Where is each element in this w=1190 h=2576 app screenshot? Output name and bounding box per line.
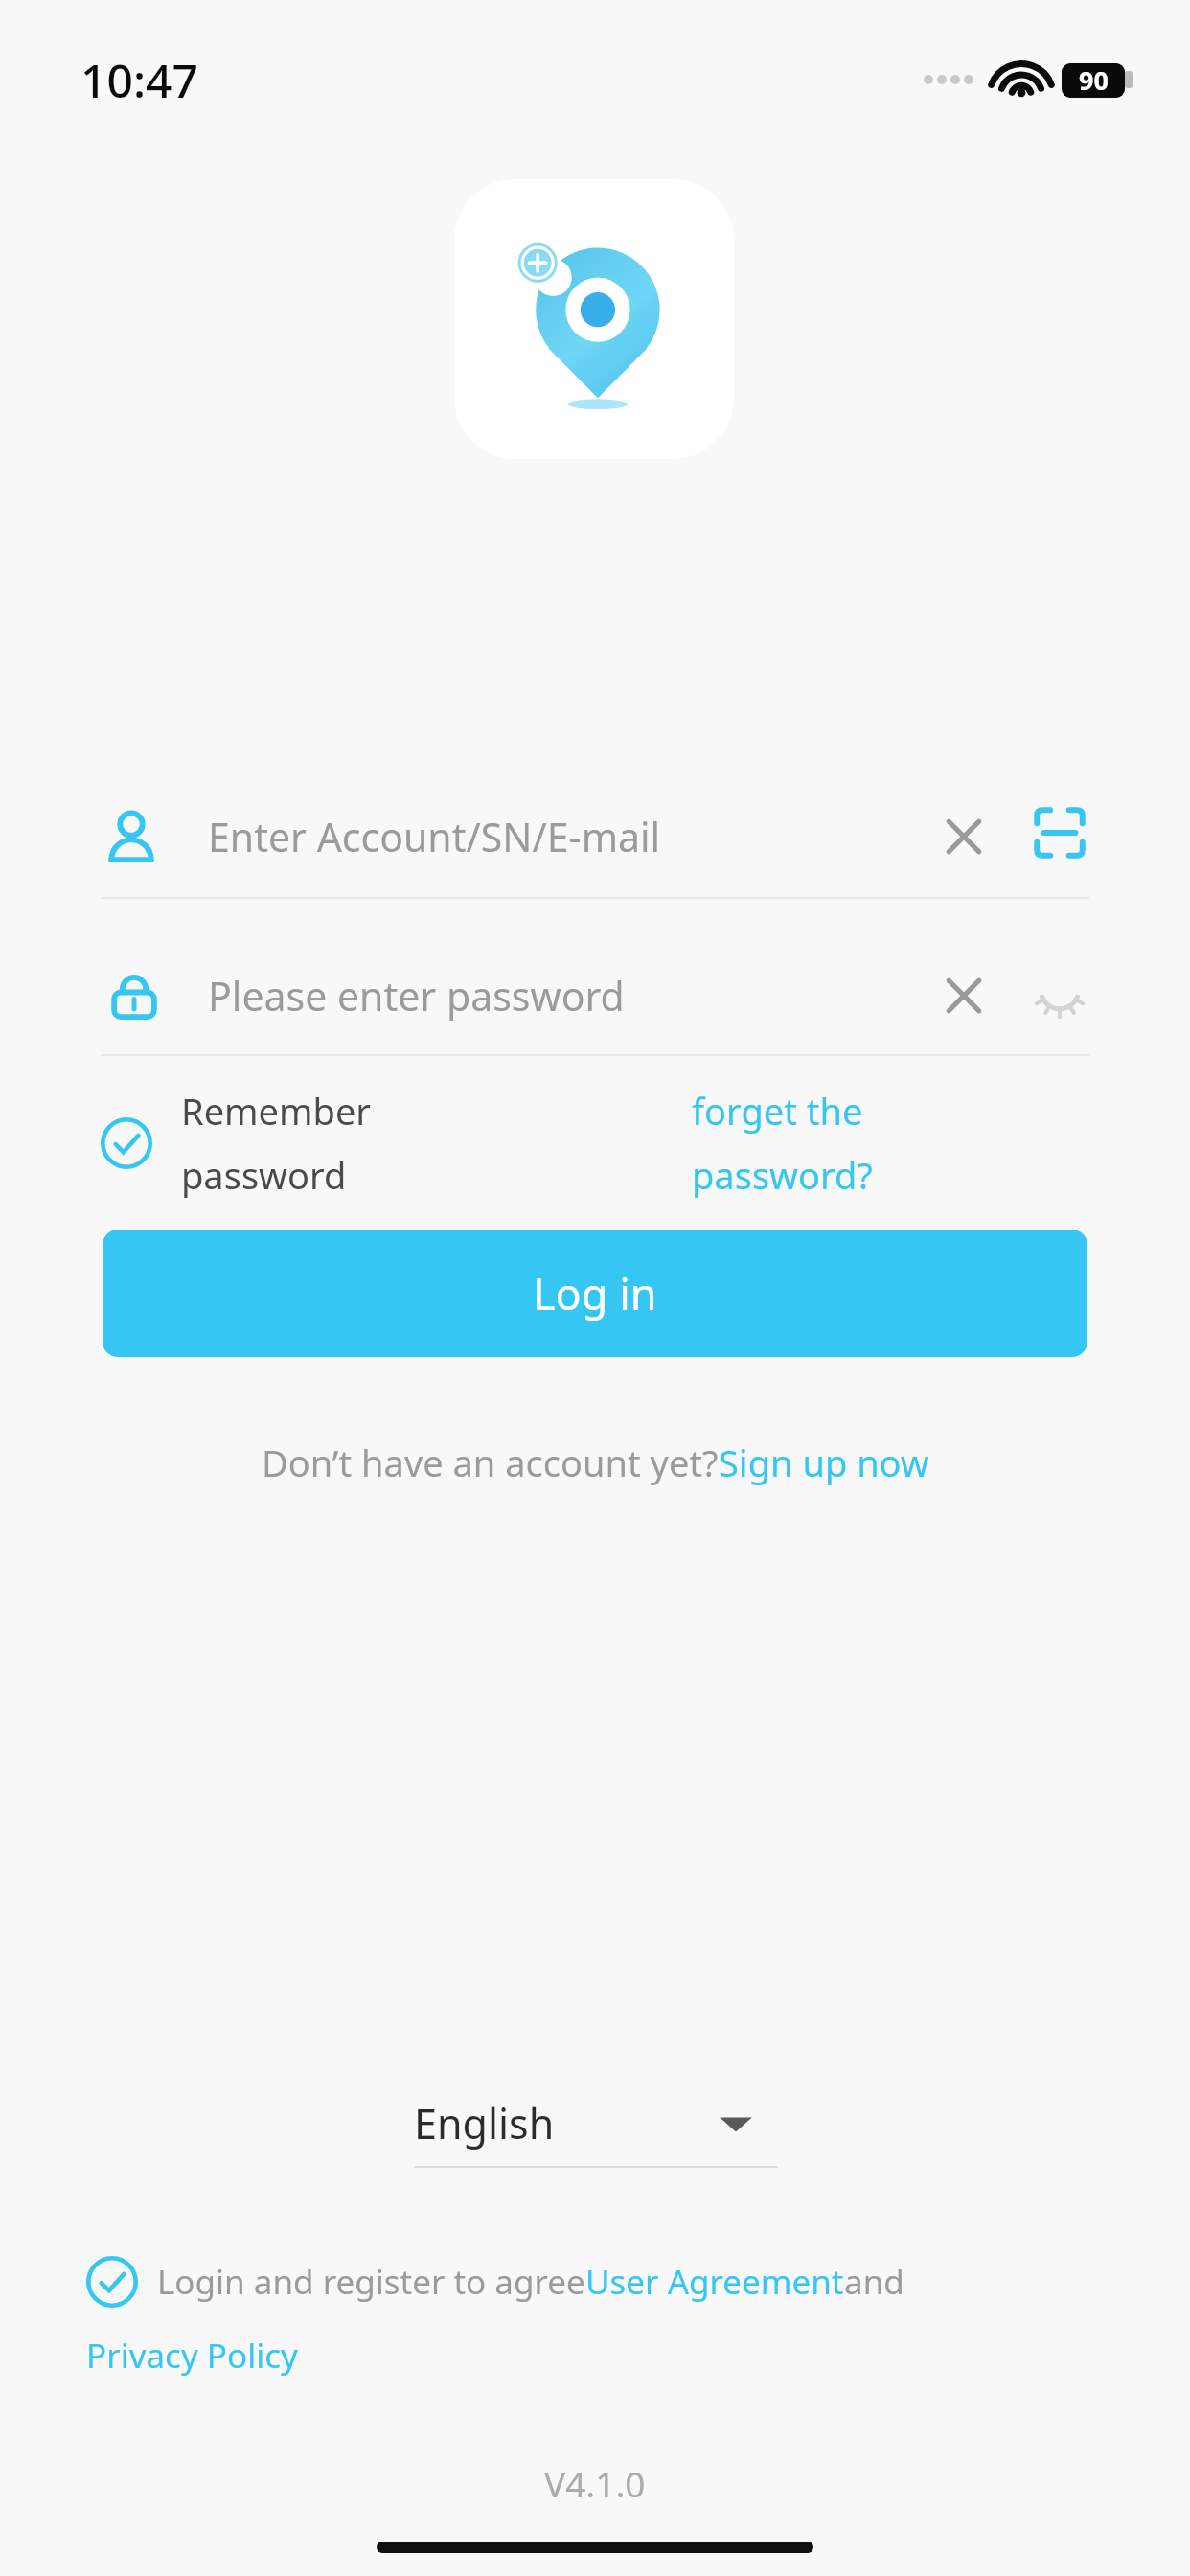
staticText: Sign up now (719, 1437, 929, 1487)
button[interactable]: Enter Account/SN/E-mail (101, 778, 1089, 895)
staticText: Privacy Policy (86, 2333, 298, 2379)
staticText: Remember password (181, 1086, 372, 1201)
staticText: Please enter password (208, 969, 625, 1023)
button[interactable]: Show password (1022, 958, 1097, 1033)
staticText: Log in (533, 1264, 657, 1322)
staticText: Login and register to agree (157, 2259, 585, 2305)
staticText: forget the password? (692, 1086, 873, 1201)
staticText: 90 (1079, 62, 1109, 98)
button[interactable]: forget the password? (692, 1081, 979, 1206)
staticText: 10:47 (80, 49, 198, 111)
staticText: and (844, 2259, 904, 2305)
button[interactable]: Agree to terms (86, 2256, 138, 2308)
button[interactable]: Privacy Policy (86, 2327, 298, 2384)
button[interactable]: User Agreement (585, 2259, 844, 2305)
button[interactable]: Sign up now (719, 1437, 929, 1487)
button[interactable]: English (414, 2080, 778, 2168)
button[interactable]: Scan QR code (1022, 795, 1097, 870)
button[interactable]: Please enter password (101, 937, 1089, 1054)
staticText: English (414, 2095, 555, 2151)
staticText: Enter Account/SN/E-mail (208, 810, 661, 863)
button[interactable]: Remember password (101, 1081, 637, 1206)
button[interactable]: Clear password (927, 958, 1001, 1033)
staticText: Don’t have an account yet? (262, 1437, 719, 1487)
button[interactable]: Log in (103, 1230, 1087, 1357)
button[interactable]: Clear account (927, 799, 1001, 874)
staticText: User Agreement (585, 2259, 844, 2305)
staticText: V4.1.0 (544, 2459, 646, 2507)
